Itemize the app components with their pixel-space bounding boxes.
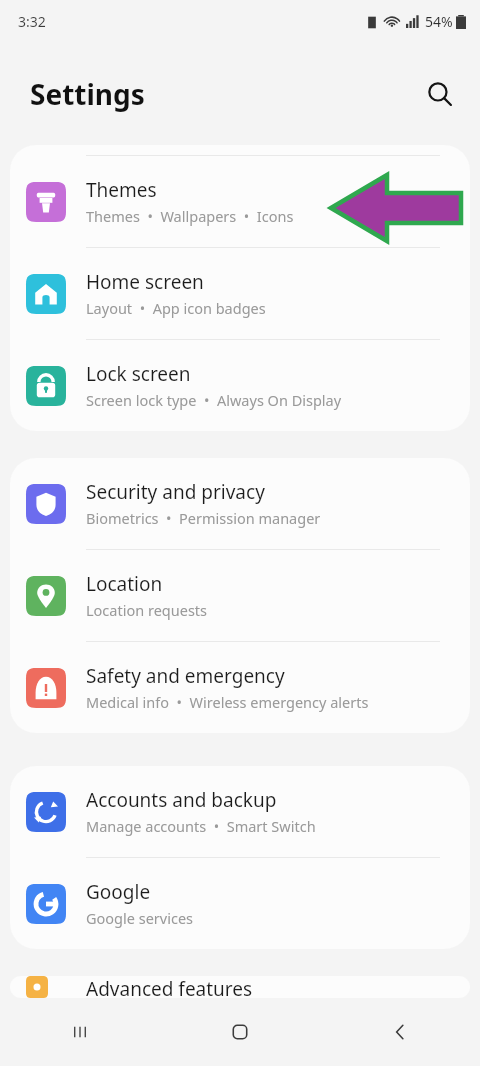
button[interactable]: Recents	[0, 998, 160, 1066]
staticText: Lock screen	[86, 361, 191, 387]
button[interactable]: Lock screen	[10, 340, 470, 431]
staticText: Safety and emergency	[86, 663, 285, 689]
staticText: Themes	[86, 177, 157, 203]
staticText: Layout • App icon badges	[86, 298, 266, 318]
button[interactable]: Advanced features	[10, 976, 470, 998]
staticText: Google	[86, 879, 151, 905]
staticText: Screen lock type • Always On Display	[86, 390, 342, 410]
button[interactable]: Search	[416, 70, 464, 118]
staticText: 3:32	[18, 12, 46, 31]
staticText: Themes • Wallpapers • Icons	[86, 206, 294, 226]
staticText: Location requests	[86, 600, 208, 620]
button[interactable]: Location	[10, 550, 470, 641]
button[interactable]: Home screen	[10, 248, 470, 339]
button[interactable]: Back	[320, 998, 480, 1066]
staticText: Medical info • Wireless emergency alerts	[86, 692, 369, 712]
button[interactable]: Home	[160, 998, 320, 1066]
button[interactable]: Themes	[10, 156, 470, 247]
staticText: Google services	[86, 908, 194, 928]
staticText: Manage accounts • Smart Switch	[86, 816, 316, 836]
staticText: Security and privacy	[86, 479, 265, 505]
button[interactable]: Safety and emergency	[10, 642, 470, 733]
staticText: Home screen	[86, 269, 204, 295]
button[interactable]: Security and privacy	[10, 458, 470, 549]
staticText: Accounts and backup	[86, 787, 277, 813]
staticText: Advanced features	[86, 976, 253, 998]
staticText: Biometrics • Permission manager	[86, 508, 321, 528]
staticText: Location	[86, 571, 163, 597]
staticText: Settings	[30, 75, 145, 113]
button[interactable]: Google	[10, 858, 470, 949]
button[interactable]: Accounts and backup	[10, 766, 470, 857]
staticText: 54%	[425, 12, 453, 31]
